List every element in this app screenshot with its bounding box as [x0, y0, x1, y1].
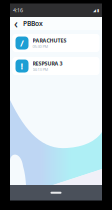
staticText: 05:30 PM: [32, 44, 48, 49]
staticText: 04:13 PM: [32, 67, 48, 72]
staticText: /: [20, 37, 24, 49]
staticText: PARACHUTES: [32, 37, 66, 44]
staticText: RESPSURA 3: [32, 60, 62, 67]
button[interactable]: !: [12, 57, 99, 75]
button[interactable]: Back: [13, 18, 19, 28]
staticText: 4:16: [13, 7, 23, 14]
staticText: PBBox: [23, 19, 43, 28]
staticText: ‹: [14, 15, 18, 31]
staticText: ◢ ▮: [93, 8, 99, 12]
button[interactable]: /: [12, 34, 99, 52]
staticText: !: [20, 60, 23, 72]
